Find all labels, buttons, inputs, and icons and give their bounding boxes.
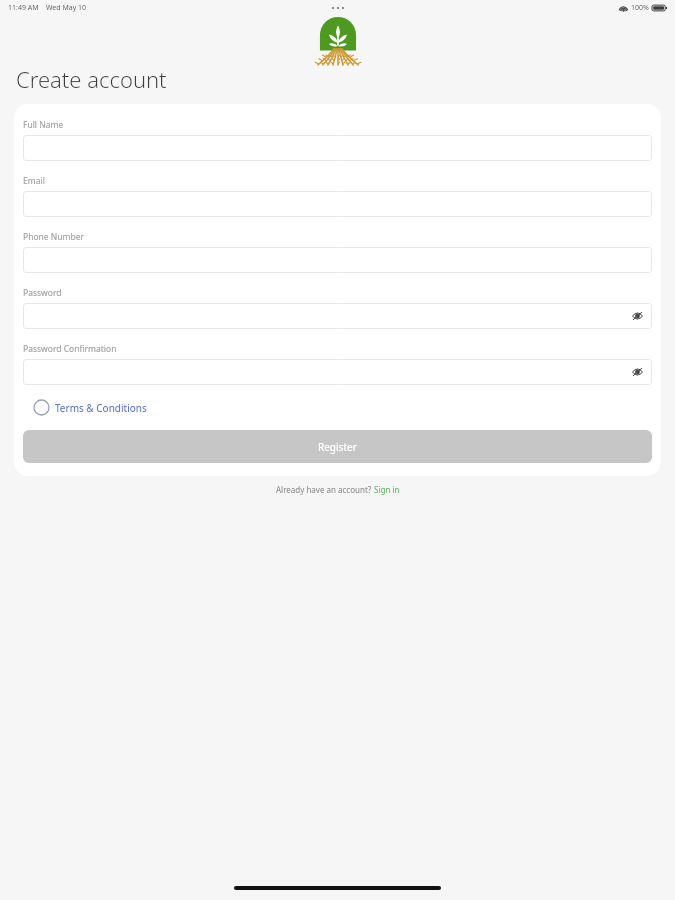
button[interactable]: Register	[23, 430, 652, 463]
staticText: 11:49 AM	[8, 3, 39, 13]
staticText: Already have an account?	[276, 484, 374, 495]
staticText: 100%	[631, 3, 649, 13]
staticText: Sign in	[374, 484, 400, 495]
staticText: Password	[23, 287, 62, 299]
staticText: Create account	[16, 64, 167, 94]
staticText: Register	[318, 440, 357, 454]
button[interactable]: Show password	[630, 365, 644, 379]
staticText: Phone Number	[23, 231, 84, 243]
staticText: Wed May 10	[46, 3, 87, 13]
button[interactable]: Show password	[630, 309, 644, 323]
button[interactable]: Sign in	[374, 484, 400, 495]
staticText: Terms & Conditions	[55, 401, 147, 415]
button[interactable]	[23, 135, 652, 161]
staticText: Password Confirmation	[23, 343, 117, 355]
staticText: Full Name	[23, 119, 64, 131]
staticText: Email	[23, 175, 45, 187]
button[interactable]	[23, 247, 652, 273]
button[interactable]: Show password	[23, 303, 652, 329]
button[interactable]	[23, 191, 652, 217]
button[interactable]: Show password	[23, 359, 652, 385]
button[interactable]: Terms & Conditions	[33, 399, 147, 416]
